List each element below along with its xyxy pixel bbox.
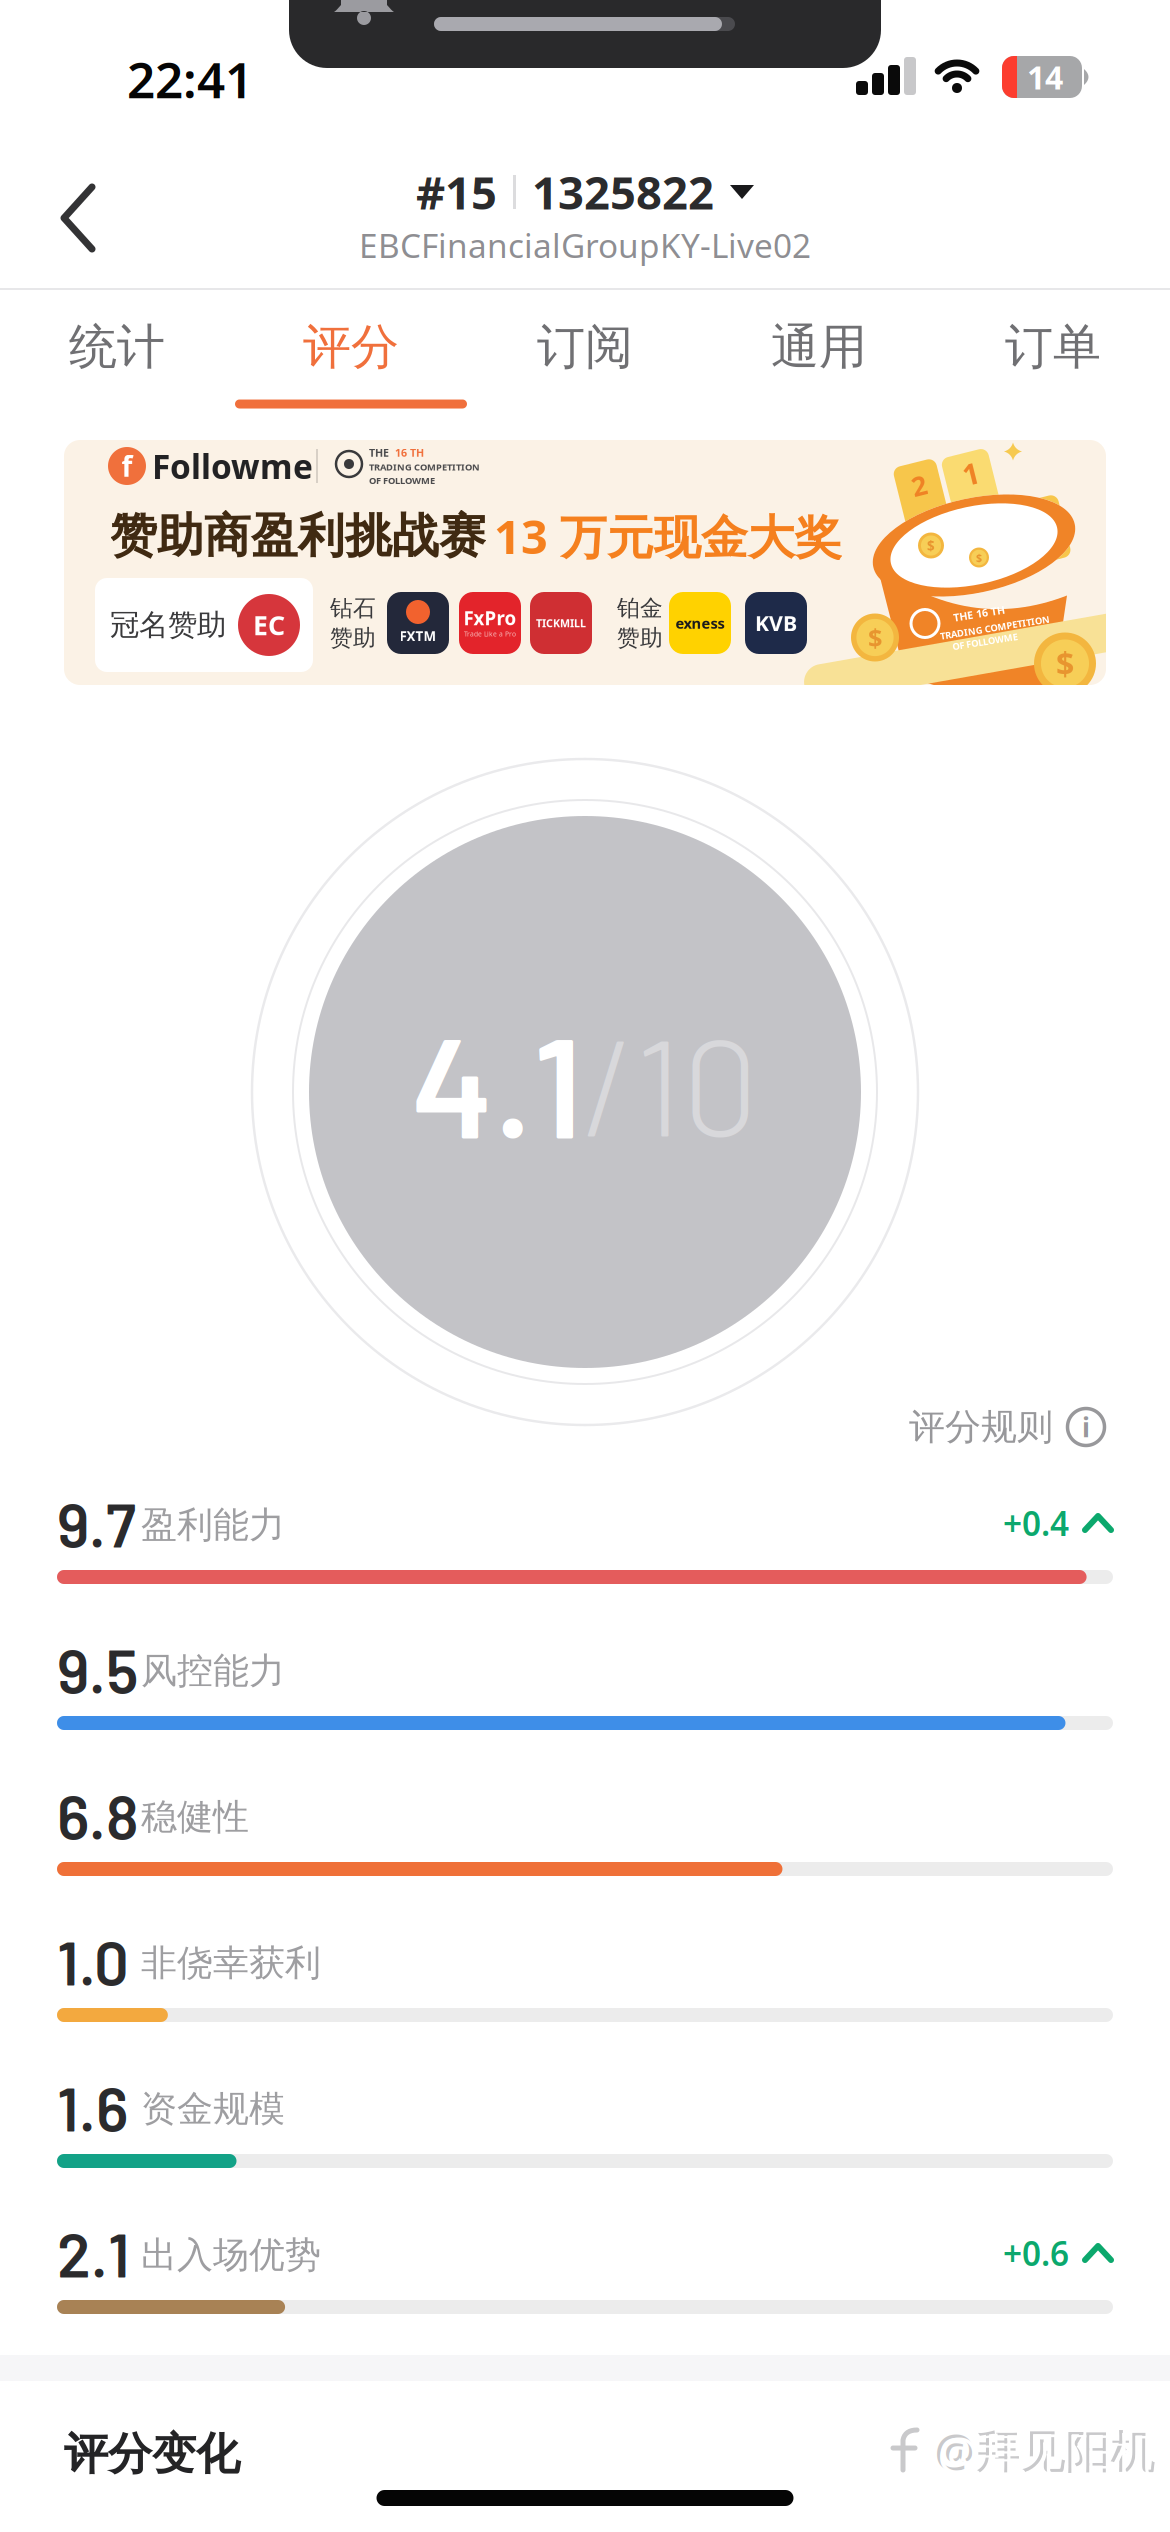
staticText: $ xyxy=(976,550,982,565)
staticText: 9.7 xyxy=(57,1486,136,1560)
staticText: TICKMILL xyxy=(536,616,586,630)
staticText: 2.1 xyxy=(57,2216,130,2290)
button[interactable]: #15 xyxy=(416,162,754,222)
staticText: 赞助 xyxy=(617,624,663,652)
staticText: $ xyxy=(868,621,882,654)
staticText: OF FOLLOWME xyxy=(369,474,435,486)
staticText: 钻石 xyxy=(330,594,376,622)
staticText: 赞助 xyxy=(330,624,376,652)
button[interactable]: 2 xyxy=(64,440,1106,685)
staticText: 9.5 xyxy=(57,1632,139,1706)
button[interactable]: 评分 xyxy=(234,290,468,425)
staticText: 订单 xyxy=(1005,317,1101,376)
staticText: Trade Like a Pro xyxy=(464,630,516,638)
button[interactable]: 通用 xyxy=(702,290,936,425)
staticText: i xyxy=(1082,1409,1090,1445)
staticText: 1 xyxy=(962,454,979,493)
button[interactable]: 评分规则 xyxy=(909,1405,1107,1449)
staticText: 4.1 xyxy=(411,997,583,1167)
staticText: +0.4 xyxy=(1003,1501,1069,1545)
staticText: 出入场优势 xyxy=(141,2233,321,2277)
staticText: THE 16 TH xyxy=(953,606,1005,621)
staticText: 通用 xyxy=(771,317,867,376)
staticText: 非侥幸获利 xyxy=(141,1941,321,1985)
staticText: 评分变化 xyxy=(64,2427,240,2481)
button[interactable]: Back xyxy=(58,182,102,254)
staticText: EC xyxy=(253,607,285,643)
staticText: $ xyxy=(927,537,935,554)
staticText: $ xyxy=(1056,642,1074,685)
staticText: 22:41 xyxy=(127,46,253,112)
staticText: FXTM xyxy=(399,627,436,645)
staticText: 稳健性 xyxy=(141,1795,249,1839)
staticText: 统计 xyxy=(69,317,165,376)
staticText: 16 TH xyxy=(395,445,424,460)
staticText: 1.6 xyxy=(57,2070,128,2144)
staticText: 3 xyxy=(1036,502,1049,532)
staticText: TRADING COMPETITION xyxy=(939,621,1050,634)
staticText: 6.8 xyxy=(57,1778,139,1852)
staticText: Followme xyxy=(152,444,313,488)
staticText: 10 xyxy=(635,1000,759,1164)
staticText: KVB xyxy=(755,609,797,637)
staticText: 评分规则 xyxy=(909,1405,1053,1449)
staticText: #15 xyxy=(416,162,497,222)
staticText: 盈利能力 xyxy=(141,1503,285,1547)
staticText: FxPro xyxy=(463,606,516,630)
staticText: 冠名赞助 xyxy=(110,607,226,643)
button[interactable]: 统计 xyxy=(0,290,234,425)
button[interactable]: 订阅 xyxy=(468,290,702,425)
button[interactable]: 订单 xyxy=(936,290,1170,425)
staticText: exness xyxy=(675,613,724,633)
button[interactable]: +0.6 xyxy=(893,2231,1113,2275)
staticText: 赞助商盈利挑战赛 xyxy=(110,507,486,565)
staticText: 14 xyxy=(1027,56,1063,98)
staticText: @拜见阳机 xyxy=(934,2420,1155,2480)
staticText: / xyxy=(583,1000,635,1164)
button[interactable]: +0.4 xyxy=(893,1501,1113,1545)
staticText: 1.0 xyxy=(57,1924,129,1998)
staticText: @拜见阳机 xyxy=(937,2423,1158,2483)
staticText: 1325822 xyxy=(532,162,714,222)
staticText: 铂金 xyxy=(617,594,663,622)
staticText: THE xyxy=(369,445,392,460)
staticText: 13 万元现金大奖 xyxy=(494,505,842,567)
staticText: EBCFinancialGroupKY-Live02 xyxy=(359,223,811,267)
staticText: 评分 xyxy=(303,317,399,376)
staticText: 订阅 xyxy=(537,317,633,376)
staticText: TRADING COMPETITION xyxy=(369,461,480,473)
staticText: 风控能力 xyxy=(141,1649,285,1693)
staticText: 2 xyxy=(911,468,926,503)
staticText: f xyxy=(121,447,132,485)
staticText: OF FOLLOWME xyxy=(952,635,1018,648)
staticText: +0.6 xyxy=(1003,2231,1069,2275)
staticText: 资金规模 xyxy=(141,2087,285,2131)
